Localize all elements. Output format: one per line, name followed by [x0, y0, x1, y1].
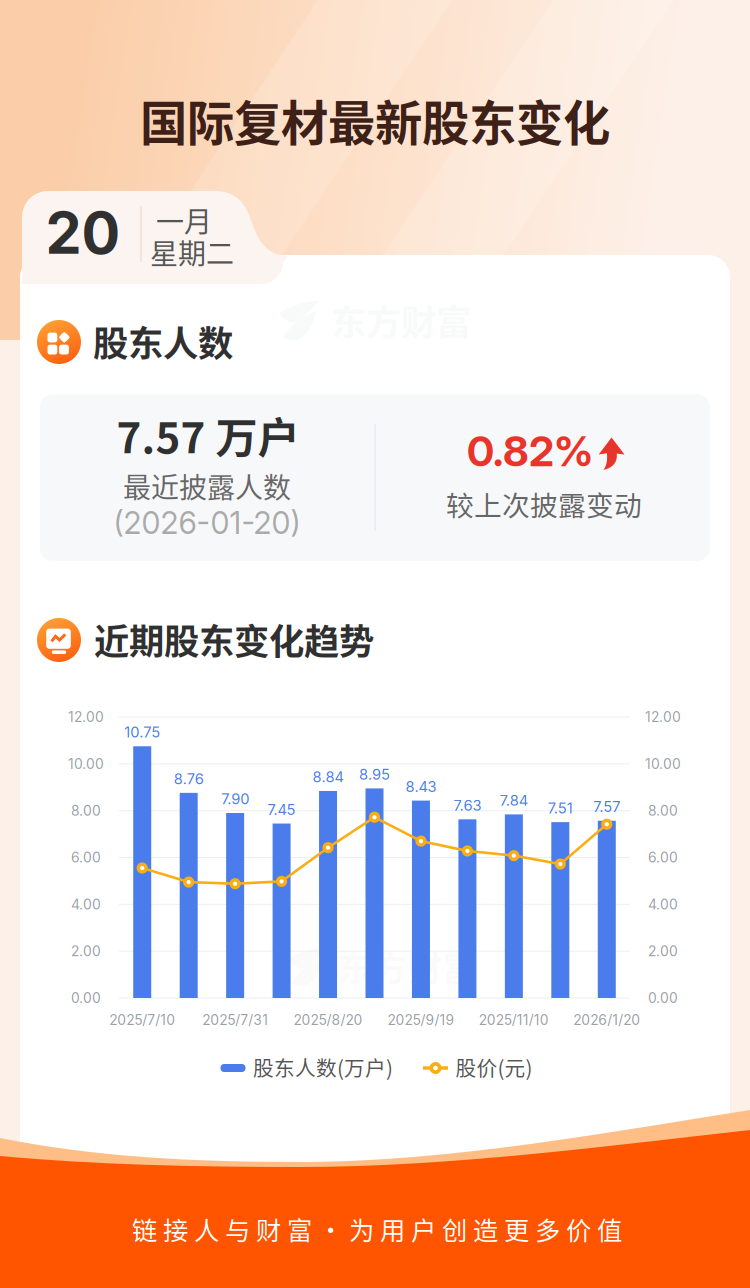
staticText: 近期股东变化趋势 [94, 613, 374, 665]
staticText: 2025/8/20 [293, 1012, 362, 1028]
staticText: 链接人与财富·为用户创造更多价值 [132, 1211, 622, 1247]
staticText: 7.63 [453, 796, 481, 814]
staticText: 4.00 [71, 896, 101, 913]
staticText: 8.00 [648, 802, 678, 819]
staticText: 10.75 [124, 723, 160, 741]
staticText: 2.00 [648, 943, 678, 960]
staticText: (2026-01-20) [113, 505, 300, 541]
staticText: 0.82% [467, 426, 593, 476]
staticText: 8.95 [359, 765, 390, 783]
staticText: 7.90 [221, 790, 249, 808]
staticText: 股东人数(万户) [253, 1052, 393, 1082]
staticText: 20 [45, 198, 120, 268]
staticText: 10.00 [645, 755, 681, 772]
staticText: 一月 [156, 200, 212, 240]
staticText: 7.57 万户 [116, 404, 299, 465]
staticText: 股东人数 [93, 315, 233, 367]
staticText: 国际复材最新股东变化 [140, 86, 610, 154]
staticText: 4.00 [648, 896, 678, 913]
staticText: 6.00 [648, 849, 678, 866]
staticText: 10.00 [68, 755, 104, 772]
staticText: 2025/7/10 [109, 1012, 175, 1028]
staticText: 2025/9/19 [387, 1012, 454, 1028]
staticText: 7.84 [500, 791, 528, 809]
staticText: 7.51 [548, 799, 573, 817]
staticText: 8.43 [405, 778, 436, 795]
staticText: 2025/7/31 [202, 1012, 268, 1028]
staticText: 0.00 [648, 990, 678, 1006]
staticText: 星期二 [150, 232, 234, 272]
staticText: 东方财富 [337, 941, 477, 991]
staticText: 2.00 [71, 943, 101, 960]
staticText: 7.45 [268, 801, 296, 818]
staticText: 股价(元) [455, 1052, 532, 1082]
staticText: 0.00 [71, 990, 101, 1006]
staticText: 7.57 [593, 798, 620, 816]
staticText: 8.76 [174, 770, 204, 788]
staticText: 最近披露人数 [123, 466, 291, 506]
staticText: 2026/1/20 [573, 1012, 640, 1028]
staticText: 6.00 [71, 849, 101, 866]
staticText: 12.00 [645, 709, 681, 725]
staticText: 8.84 [312, 768, 343, 786]
staticText: 2025/11/10 [479, 1012, 549, 1028]
staticText: 12.00 [68, 709, 104, 725]
staticText: 较上次披露变动 [446, 484, 642, 524]
staticText: 8.00 [71, 802, 101, 819]
